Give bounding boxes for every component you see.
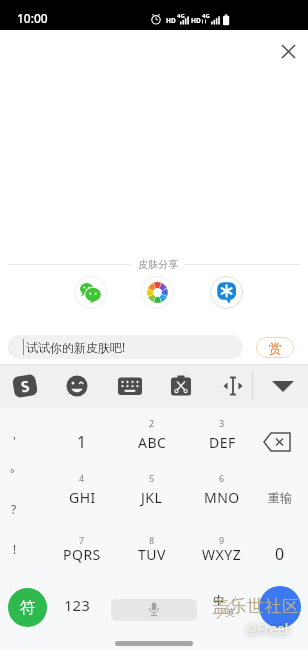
button[interactable]: MNO xyxy=(182,483,262,511)
button[interactable] xyxy=(117,373,143,399)
staticText: 5 xyxy=(149,472,155,484)
button[interactable] xyxy=(168,373,194,399)
staticText: ! xyxy=(13,541,17,557)
button[interactable]: 123 xyxy=(37,591,117,619)
staticText: 3 xyxy=(219,417,225,429)
button[interactable]: JKL xyxy=(112,483,192,511)
staticText: ' xyxy=(13,433,16,449)
button[interactable] xyxy=(64,373,90,399)
staticText: GHI xyxy=(69,488,96,507)
button[interactable]: 符 xyxy=(8,588,47,627)
staticText: 重输 xyxy=(268,490,292,505)
staticText: 4G xyxy=(177,12,185,20)
staticText: 试试你的新皮肤吧! xyxy=(26,339,126,355)
staticText: TUV xyxy=(138,545,166,564)
button[interactable]: 0 xyxy=(240,540,308,568)
button[interactable]: 1 xyxy=(42,428,122,456)
staticText: 6 xyxy=(219,472,225,484)
button[interactable]: ° xyxy=(0,458,52,486)
staticText: 2 xyxy=(149,417,155,429)
staticText: 皮肤分享 xyxy=(138,258,178,271)
button[interactable]: GHI xyxy=(42,483,122,511)
staticText: WXYZ xyxy=(202,545,242,564)
staticText: 符 xyxy=(20,598,36,618)
staticText: 中 xyxy=(213,593,225,608)
button[interactable]: 赏 xyxy=(256,337,294,358)
staticText: 0 xyxy=(275,543,285,565)
button[interactable]: ' xyxy=(0,427,54,455)
staticText: 1 xyxy=(77,431,87,453)
staticText: ° xyxy=(10,465,15,480)
staticText: 4G xyxy=(202,12,210,20)
button[interactable]: 中 xyxy=(207,591,247,625)
staticText: 8 xyxy=(149,534,155,546)
button[interactable]: ! xyxy=(0,535,55,563)
staticText: MNO xyxy=(204,488,240,507)
button[interactable]: TUV xyxy=(112,540,192,568)
button[interactable] xyxy=(276,39,301,64)
staticText: @Freel xyxy=(245,620,289,638)
button[interactable] xyxy=(259,586,301,628)
staticText: 9 xyxy=(219,534,225,546)
button[interactable]: 重输 xyxy=(240,483,308,511)
staticText: 10:00 xyxy=(17,10,48,26)
staticText: HD xyxy=(191,16,201,25)
button[interactable] xyxy=(141,276,174,309)
button[interactable]: ? xyxy=(0,495,54,523)
staticText: PQRS xyxy=(63,545,101,564)
button[interactable] xyxy=(74,276,107,309)
staticText: ? xyxy=(11,501,17,517)
staticText: JKL xyxy=(141,488,163,507)
staticText: HD xyxy=(166,16,176,25)
button[interactable]: PQRS xyxy=(42,540,122,568)
staticText: ABC xyxy=(138,433,167,452)
button[interactable]: ABC xyxy=(112,428,192,456)
staticText: 赏 xyxy=(269,340,282,356)
button[interactable]: WXYZ xyxy=(182,540,262,568)
staticText: 4 xyxy=(79,472,85,484)
button[interactable] xyxy=(270,373,296,399)
button[interactable] xyxy=(111,599,197,621)
staticText: 7 xyxy=(79,534,85,546)
staticText: DEF xyxy=(209,433,236,452)
button[interactable]: DEF xyxy=(182,428,262,456)
staticText: S xyxy=(19,375,32,397)
button[interactable]: S xyxy=(12,373,38,399)
staticText: 盖乐世社区 xyxy=(212,596,300,617)
staticText: 英 xyxy=(225,606,235,619)
button[interactable]: 试试你的新皮肤吧! xyxy=(8,335,243,359)
staticText: 123 xyxy=(64,595,90,615)
button[interactable] xyxy=(262,428,296,456)
button[interactable] xyxy=(220,373,246,399)
button[interactable] xyxy=(210,276,243,309)
